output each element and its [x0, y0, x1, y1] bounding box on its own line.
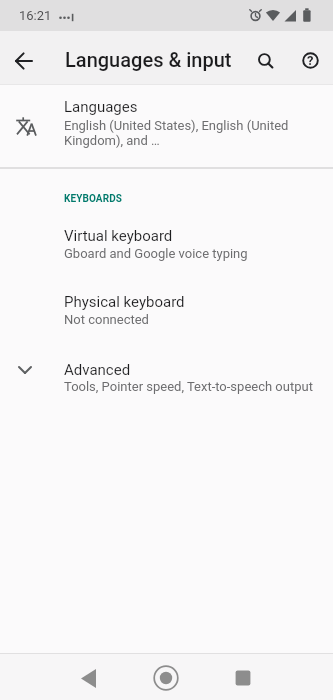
staticText: Kingdom), and … — [64, 133, 160, 148]
staticText: 16:21 — [19, 8, 52, 23]
staticText: Advanced — [64, 361, 131, 379]
staticText: Tools, Pointer speed, Text-to-speech out… — [64, 379, 313, 394]
button[interactable]: Physical keyboard — [0, 284, 333, 348]
staticText: English (United States), English (United — [64, 118, 289, 133]
staticText: Virtual keyboard — [64, 227, 173, 245]
button[interactable] — [213, 654, 273, 700]
staticText: Gboard and Google voice typing — [64, 246, 248, 261]
staticText: Not connected — [64, 312, 149, 327]
staticText: Physical keyboard — [64, 293, 185, 311]
button[interactable]: Advanced — [0, 350, 333, 406]
staticText: ? — [307, 53, 314, 68]
button[interactable]: ? — [287, 34, 333, 80]
button[interactable] — [136, 654, 196, 700]
button[interactable] — [58, 654, 118, 700]
button[interactable] — [0, 34, 48, 82]
button[interactable]: Languages — [0, 85, 333, 168]
staticText: Languages — [64, 98, 138, 116]
button[interactable] — [241, 34, 289, 82]
button[interactable]: Virtual keyboard — [0, 218, 333, 282]
staticText: Languages & input — [65, 48, 232, 71]
staticText: KEYBOARDS — [64, 193, 123, 205]
